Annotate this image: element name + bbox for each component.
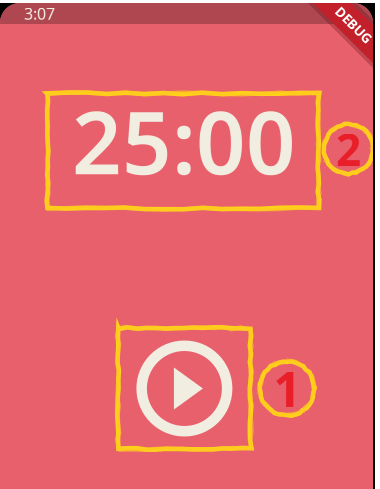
staticText: 3:07 — [24, 3, 55, 24]
staticText: 1 — [273, 357, 300, 420]
staticText: DEBUG — [331, 16, 377, 34]
staticText: 2 — [336, 120, 361, 178]
button[interactable]: Start timer — [116, 326, 253, 451]
staticText: 25:00 — [72, 83, 296, 198]
